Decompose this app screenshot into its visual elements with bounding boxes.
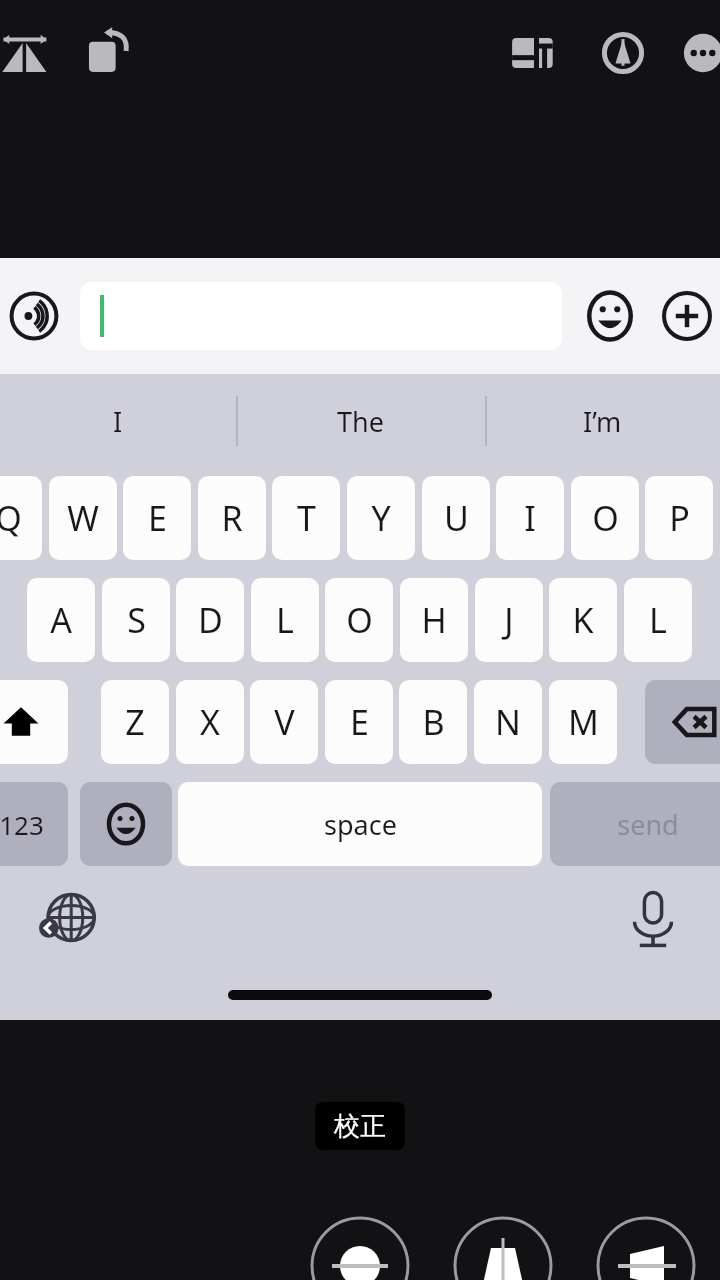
staticText: K [572,597,594,643]
staticText: J [504,597,514,643]
button[interactable]: Shift [0,680,68,764]
button[interactable]: L [251,578,319,662]
staticText: send [617,806,679,843]
button[interactable]: Change keyboard language [32,886,102,956]
button[interactable]: U [422,476,490,560]
staticText: Z [125,699,145,745]
button[interactable]: V [250,680,318,764]
button[interactable]: Voice input [620,886,686,952]
button[interactable]: A [27,578,95,662]
button[interactable]: Emoji keyboard [80,782,172,866]
staticText: V [274,699,295,745]
button[interactable]: Keystone correction [453,1216,553,1280]
button[interactable]: P [645,476,713,560]
button[interactable]: More options [674,24,720,82]
staticText: L [276,597,294,643]
button[interactable]: Flip horizontal [0,22,58,80]
staticText: I [113,403,123,440]
staticText: S [127,597,146,643]
staticText: I’m [583,403,622,440]
button[interactable]: E [123,476,191,560]
staticText: X [200,699,220,745]
button[interactable]: Q [0,476,42,560]
staticText: W [67,495,99,541]
button[interactable]: Voice broadcast [6,288,62,344]
button[interactable]: O [571,476,639,560]
staticText: E [350,699,369,745]
button[interactable]: Layout [504,24,562,82]
button[interactable]: 校正 [315,1102,405,1150]
button[interactable]: 123 [0,782,68,866]
staticText: 123 [0,807,44,842]
button[interactable]: I’m [485,374,720,468]
staticText: N [495,699,521,745]
button[interactable]: R [198,476,266,560]
button[interactable]: J [475,578,543,662]
staticText: U [444,495,469,541]
button[interactable]: Rotate [82,22,140,80]
staticText: The [337,403,384,440]
button[interactable]: Y [347,476,415,560]
button[interactable]: Pen tool [594,24,652,82]
button[interactable]: B [399,680,467,764]
staticText: D [198,597,223,643]
staticText: M [568,699,599,745]
button[interactable]: K [549,578,617,662]
staticText: O [592,495,619,541]
button[interactable]: space [178,782,542,866]
button[interactable]: I [496,476,564,560]
staticText: 校正 [334,1110,386,1143]
button[interactable]: L [624,578,692,662]
staticText: E [148,495,167,541]
button[interactable]: S [102,578,170,662]
button[interactable]: O [325,578,393,662]
staticText: O [346,597,373,643]
button[interactable]: Emoji [582,288,638,344]
button[interactable]: D [176,578,244,662]
button[interactable]: W [49,476,117,560]
staticText: A [50,597,72,643]
staticText: P [669,495,690,541]
staticText: T [297,495,316,541]
button[interactable]: N [474,680,542,764]
button[interactable]: M [549,680,617,764]
button[interactable]: Backspace [645,680,720,764]
staticText: Q [0,495,22,541]
staticText: Y [371,495,391,541]
staticText: H [421,597,447,643]
button[interactable]: The [236,374,485,468]
staticText: space [324,806,397,843]
staticText: I [524,495,536,541]
button[interactable]: X [176,680,244,764]
staticText: R [221,495,243,541]
staticText: L [649,597,667,643]
button[interactable]: H [400,578,468,662]
button[interactable]: E [325,680,393,764]
button[interactable]: Vertical correction [310,1216,410,1280]
button[interactable]: I [0,374,236,468]
button[interactable]: send [550,782,720,866]
staticText: B [422,699,445,745]
button[interactable]: Add attachment [659,288,715,344]
button[interactable] [80,282,562,350]
button[interactable]: T [272,476,340,560]
button[interactable]: Z [101,680,169,764]
button[interactable]: Horizontal correction [596,1216,696,1280]
